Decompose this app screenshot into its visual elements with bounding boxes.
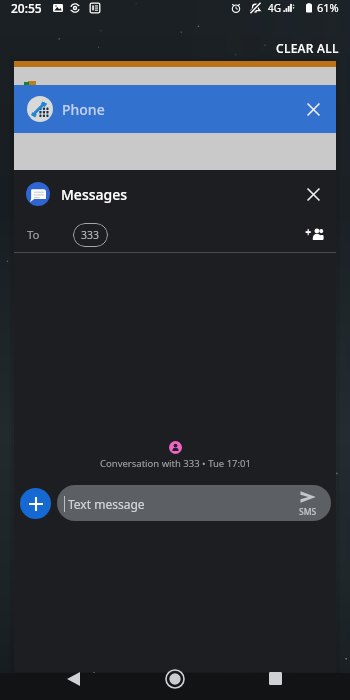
button[interactable]: Add people <box>296 218 332 252</box>
staticText: Text message <box>68 496 145 512</box>
staticText: Phone <box>62 100 105 119</box>
button[interactable]: Close Phone notification <box>295 91 331 127</box>
button[interactable]: Recent apps <box>255 659 296 698</box>
button[interactable]: Phone <box>14 85 336 133</box>
button[interactable]: 333 <box>73 223 108 247</box>
staticText: Conversation with 333 • Tue 17:01 <box>100 457 251 470</box>
button[interactable]: Home <box>154 659 196 698</box>
staticText: CLEAR ALL <box>276 40 339 56</box>
staticText: Messages <box>61 185 128 204</box>
button[interactable]: CLEAR ALL <box>268 36 347 60</box>
staticText: SMS <box>299 506 317 518</box>
staticText: To <box>27 227 40 243</box>
staticText: 333 <box>81 228 100 242</box>
staticText: 61% <box>317 0 339 15</box>
staticText: 4G <box>268 1 281 15</box>
button[interactable]: Text message <box>57 485 331 521</box>
button[interactable]: Add attachment <box>20 488 51 519</box>
button[interactable]: Back <box>52 659 95 698</box>
staticText: 20:55 <box>11 0 42 16</box>
button[interactable]: Close <box>295 176 331 212</box>
